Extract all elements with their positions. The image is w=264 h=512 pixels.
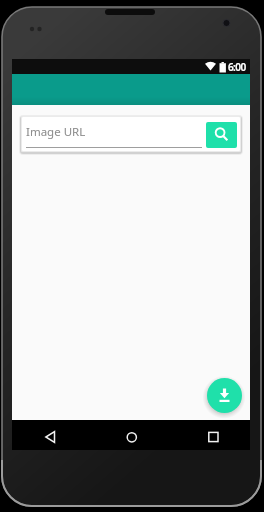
button[interactable] bbox=[206, 122, 237, 148]
button[interactable] bbox=[171, 420, 250, 450]
staticText: Image URL bbox=[26, 124, 86, 140]
staticText: 6:00 bbox=[228, 60, 246, 74]
button[interactable] bbox=[207, 378, 242, 413]
button[interactable] bbox=[12, 420, 92, 450]
button[interactable]: Image URL bbox=[26, 116, 202, 152]
button[interactable] bbox=[92, 420, 171, 450]
